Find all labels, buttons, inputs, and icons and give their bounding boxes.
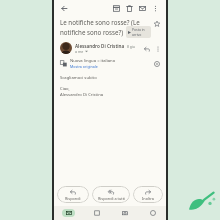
staticText: Inoltra — [142, 196, 154, 201]
staticText: a me — [75, 49, 84, 54]
button[interactable]: Recents — [82, 206, 110, 220]
button[interactable]: Rispondi — [57, 186, 89, 203]
staticText: Posta in arrivo — [132, 27, 149, 37]
button[interactable]: Star — [151, 18, 162, 29]
button[interactable]: Inoltra — [133, 186, 163, 203]
staticText: notifiche sono rosse?) — [60, 28, 124, 36]
button[interactable]: Reply — [141, 43, 152, 54]
staticText: Nuova lingua = italiano — [70, 58, 116, 64]
button[interactable]: More options — [152, 43, 163, 54]
staticText: Alessandro Di Cristina — [75, 43, 125, 49]
button[interactable]: Home — [138, 206, 166, 220]
staticText: Rispondi — [65, 196, 81, 201]
staticText: 8 giu — [127, 44, 135, 49]
staticText: Scagliamoci subito — [60, 75, 97, 81]
staticText: Alessandro Di Cristina — [60, 92, 104, 98]
button[interactable]: Rispondi a tutti — [92, 186, 130, 203]
button[interactable]: Mark unread — [136, 2, 149, 15]
staticText: Le notifiche sono rosse? (Le — [60, 18, 140, 26]
button[interactable]: Translate settings — [152, 59, 162, 69]
staticText: Rispondi a tutti — [98, 196, 125, 201]
button[interactable]: Archive — [110, 2, 123, 15]
staticText: Ciao, — [60, 86, 70, 92]
button[interactable]: Sender avatar — [60, 42, 72, 54]
button[interactable]: More options — [149, 2, 162, 15]
button[interactable]: Mostra originale — [70, 64, 98, 69]
button[interactable]: Posta in arrivo — [126, 26, 151, 38]
button[interactable]: Gmail — [54, 206, 82, 220]
button[interactable]: Delete — [123, 2, 136, 15]
button[interactable]: Camera — [110, 206, 138, 220]
button[interactable]: Back — [58, 2, 71, 15]
staticText: Mostra originale — [70, 64, 98, 69]
